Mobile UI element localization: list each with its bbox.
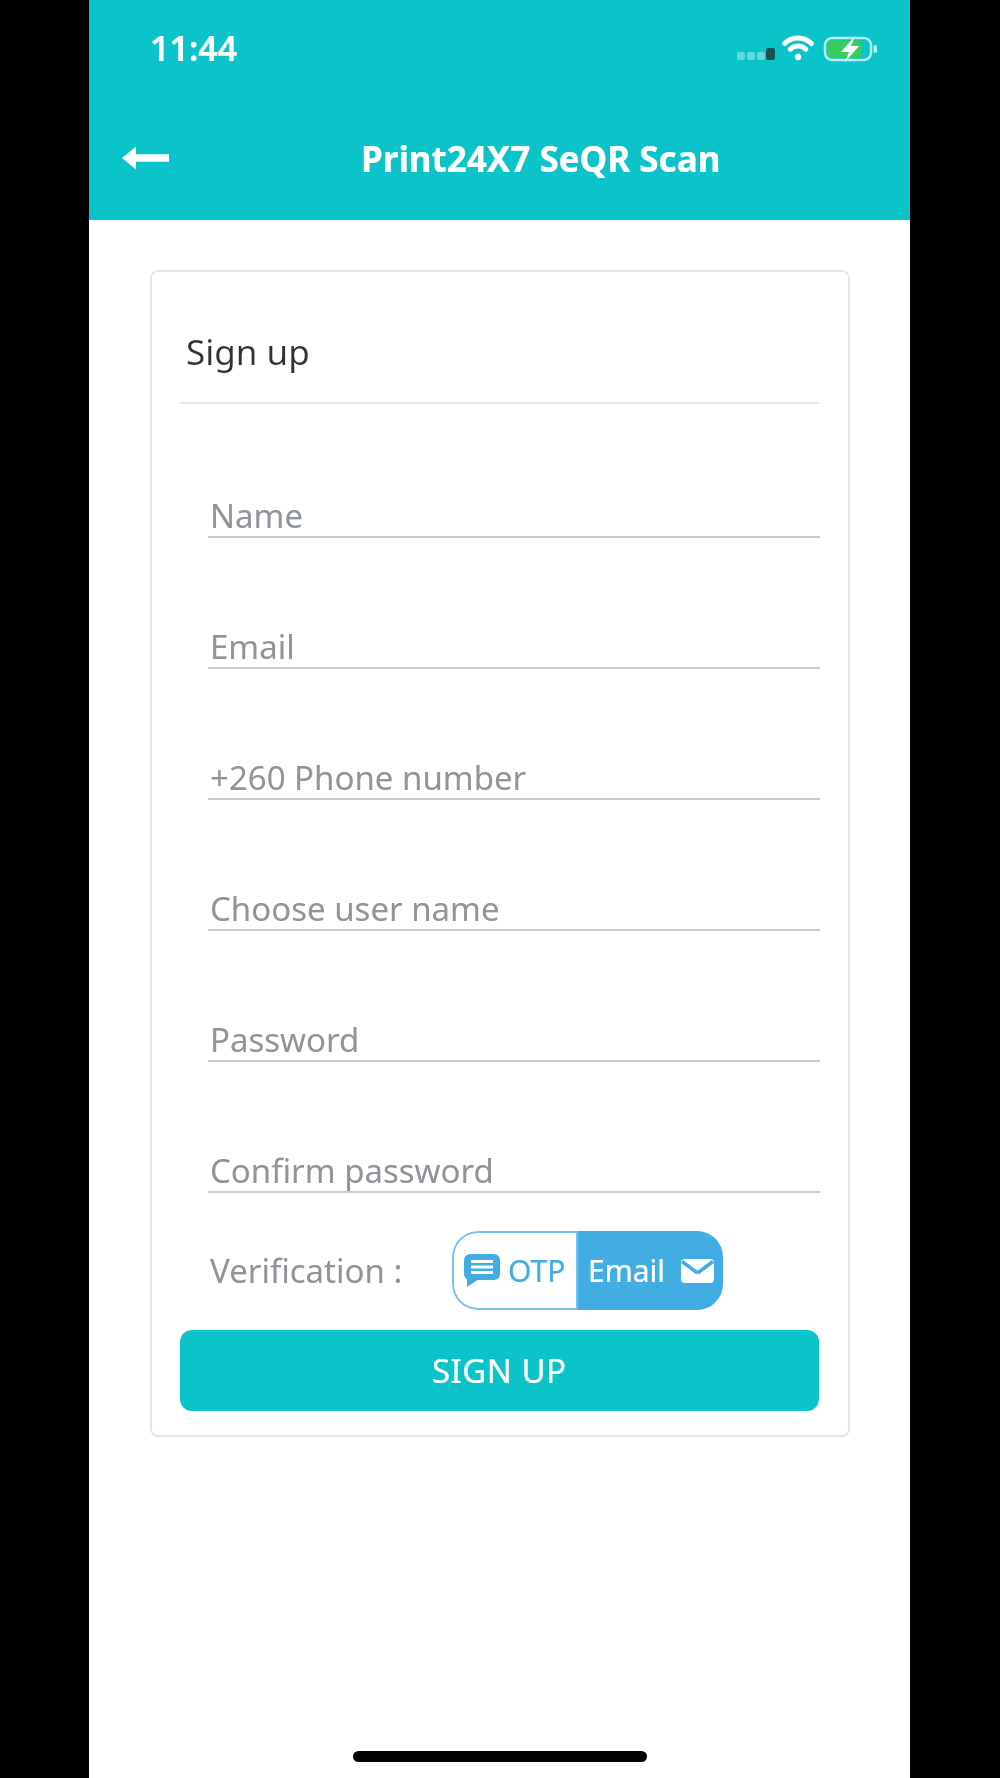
- staticText: Print24X7 SeQR Scan: [361, 135, 721, 183]
- staticText: Email: [210, 624, 295, 669]
- staticText: +260 Phone number: [210, 755, 527, 800]
- staticText: SIGN UP: [432, 1348, 567, 1393]
- button[interactable]: SIGN UP: [180, 1330, 819, 1411]
- button[interactable]: [114, 132, 180, 184]
- staticText: Name: [210, 493, 304, 538]
- staticText: 11:44: [150, 25, 238, 69]
- button[interactable]: OTP: [452, 1231, 578, 1310]
- staticText: Email: [588, 1250, 666, 1291]
- button[interactable]: Email: [578, 1231, 723, 1310]
- staticText: Sign up: [186, 328, 310, 376]
- staticText: Password: [210, 1017, 360, 1062]
- staticText: Choose user name: [210, 886, 500, 931]
- staticText: Verification :: [210, 1248, 403, 1293]
- staticText: OTP: [508, 1250, 566, 1291]
- staticText: Confirm password: [210, 1148, 494, 1193]
